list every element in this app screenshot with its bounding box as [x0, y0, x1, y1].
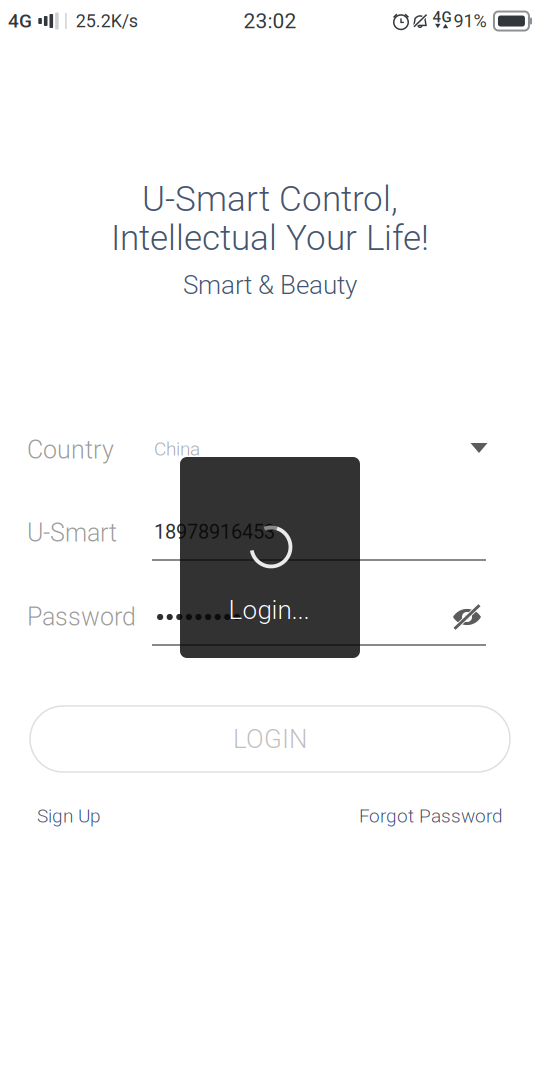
staticText: China — [154, 438, 200, 460]
staticText: 4G — [8, 10, 32, 32]
staticText: 18978916453 — [154, 520, 275, 544]
button[interactable]: LOGIN — [30, 706, 510, 772]
button[interactable]: Forgot Password — [303, 794, 503, 838]
staticText: Intellectual Your Life! — [111, 217, 429, 258]
staticText: U-Smart — [27, 518, 117, 548]
staticText: Forgot Password — [359, 805, 503, 827]
staticText: 4G — [432, 8, 451, 26]
staticText: Password — [27, 602, 136, 632]
button[interactable]: Sign Up — [37, 794, 147, 838]
staticText: 23:02 — [243, 9, 296, 33]
staticText: Country — [27, 435, 114, 465]
button[interactable]: Select country — [453, 424, 505, 472]
staticText: Sign Up — [37, 805, 101, 827]
staticText: 25.2K/s — [76, 10, 138, 32]
staticText: Login... — [228, 595, 309, 625]
staticText: 91% — [453, 10, 486, 32]
button[interactable]: Show password — [438, 593, 496, 641]
staticText: Smart & Beauty — [183, 270, 357, 300]
staticText: U-Smart Control, — [142, 178, 398, 219]
staticText: LOGIN — [233, 724, 307, 754]
